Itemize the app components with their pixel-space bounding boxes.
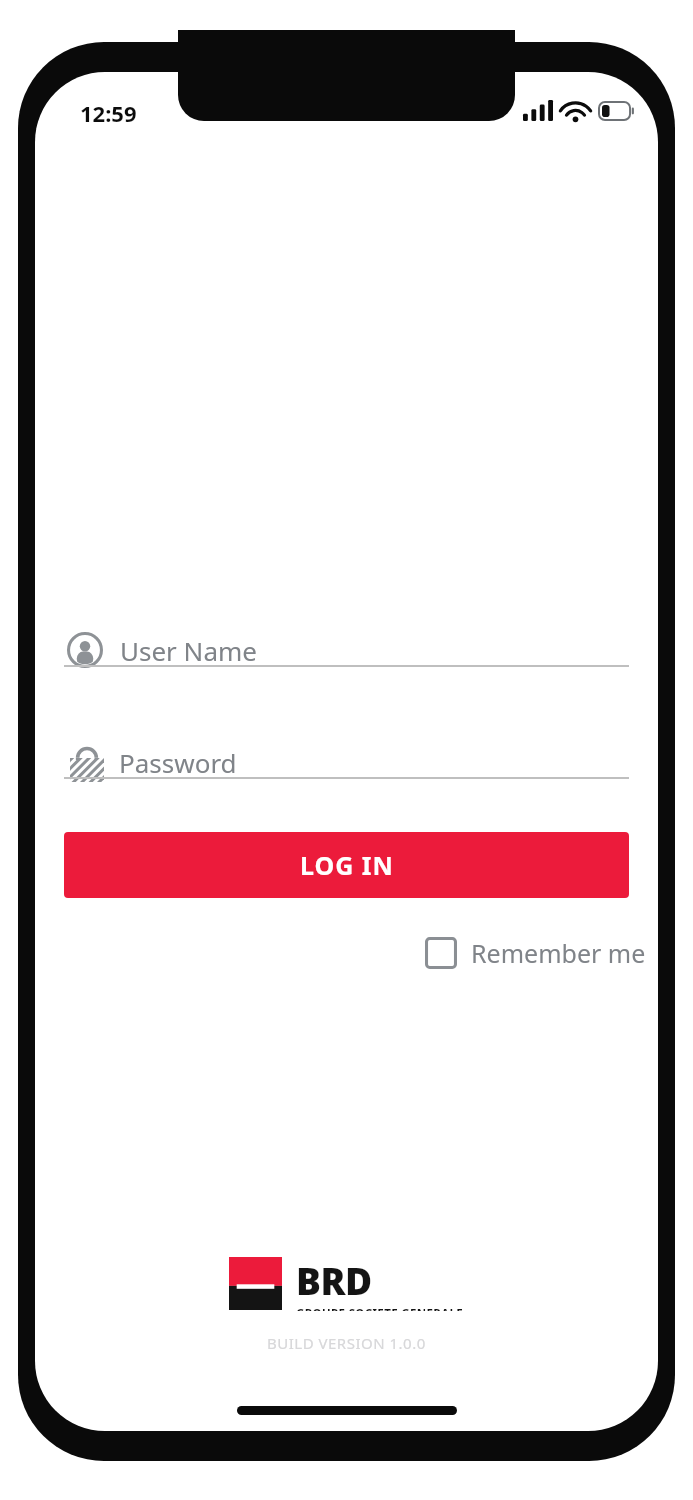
other: Password bbox=[70, 742, 104, 782]
staticText: Password bbox=[119, 745, 237, 780]
staticText: BRD bbox=[296, 1255, 372, 1305]
button[interactable]: User name bbox=[64, 620, 629, 680]
other: User name bbox=[67, 632, 103, 668]
staticText: LOG IN bbox=[300, 848, 394, 882]
staticText: Remember me bbox=[471, 936, 646, 970]
button[interactable]: Password bbox=[64, 732, 629, 792]
staticText: BUILD VERSION 1.0.0 bbox=[267, 1333, 426, 1353]
button[interactable]: Remember me bbox=[425, 928, 648, 978]
button[interactable]: LOG IN bbox=[64, 832, 629, 898]
staticText: GROUPE SOCIETE GENERALE bbox=[296, 1306, 464, 1311]
staticText: 12:59 bbox=[80, 98, 137, 128]
staticText: User Name bbox=[120, 633, 257, 668]
